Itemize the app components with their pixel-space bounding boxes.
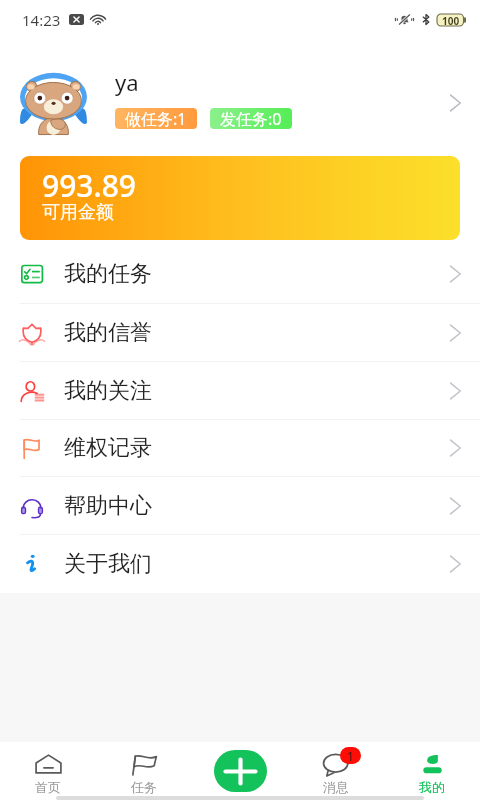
staticText: 首页	[35, 779, 61, 795]
staticText: 我的关注	[64, 377, 152, 405]
button[interactable]: 993.89	[20, 156, 460, 240]
button[interactable]: ya	[0, 69, 480, 138]
other: Add	[214, 750, 267, 792]
staticText: 做任务:1	[125, 108, 187, 129]
button[interactable]: 我的信誉	[0, 304, 480, 361]
button[interactable]: 维权记录	[0, 420, 480, 476]
staticText: 14:23	[22, 10, 61, 30]
button[interactable]: 1	[288, 742, 384, 800]
button[interactable]: 任务	[96, 742, 192, 800]
staticText: 帮助中心	[64, 492, 152, 520]
button[interactable]: 我的	[384, 742, 480, 800]
staticText: 993.89	[42, 165, 136, 206]
staticText: 100	[442, 14, 460, 26]
button[interactable]: 我的关注	[0, 362, 480, 419]
staticText: 可用金额	[42, 201, 114, 224]
staticText: 我的	[419, 779, 445, 795]
button[interactable]: 关于我们	[0, 535, 480, 592]
staticText: 关于我们	[64, 550, 152, 578]
staticText: 消息	[323, 779, 349, 795]
button[interactable]: 首页	[0, 742, 96, 800]
button[interactable]: 我的任务	[0, 245, 480, 303]
staticText: 任务	[131, 779, 157, 795]
staticText: 我的任务	[64, 260, 152, 288]
staticText: 维权记录	[64, 434, 152, 462]
staticText: 1	[347, 748, 354, 764]
button[interactable]: 帮助中心	[0, 477, 480, 534]
staticText: 发任务:0	[220, 108, 282, 129]
staticText: ya	[115, 67, 139, 97]
staticText: 我的信誉	[64, 319, 152, 347]
button[interactable]: Add	[192, 742, 288, 800]
